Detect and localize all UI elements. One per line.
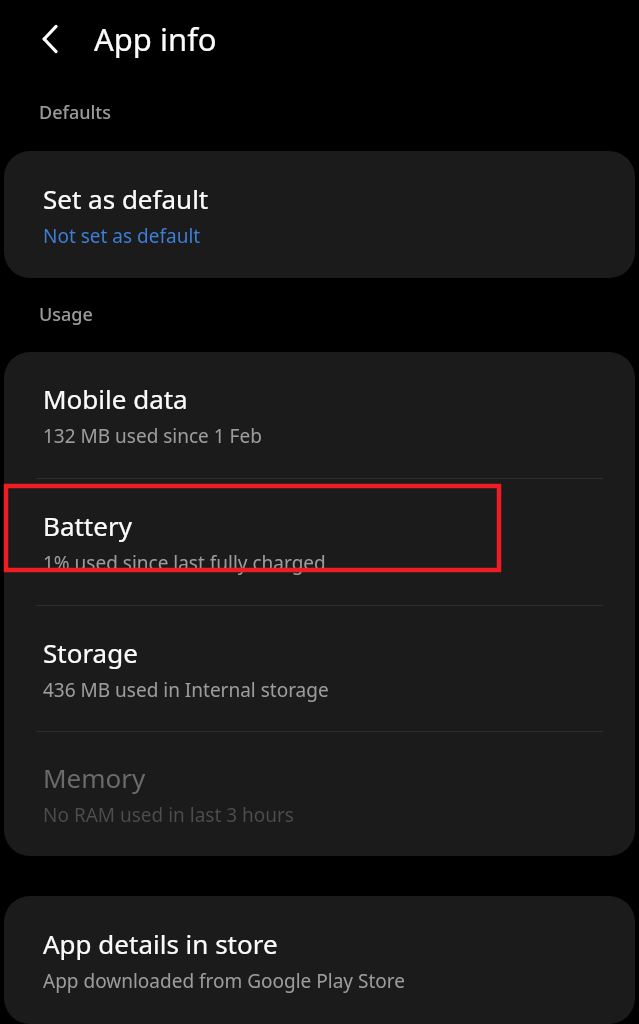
button[interactable]: Set as default	[4, 151, 635, 278]
staticText: 1% used since last fully charged	[43, 550, 326, 576]
staticText: Not set as default	[43, 223, 201, 249]
staticText: Memory	[43, 760, 146, 795]
staticText: Mobile data	[43, 381, 188, 416]
button[interactable]: Battery	[4, 479, 635, 605]
staticText: App downloaded from Google Play Store	[43, 968, 405, 994]
staticText: Usage	[39, 302, 93, 327]
button[interactable]: App details in store	[4, 896, 635, 1024]
staticText: No RAM used in last 3 hours	[43, 802, 294, 828]
staticText: Battery	[43, 508, 132, 543]
button[interactable]: Storage	[4, 606, 635, 731]
staticText: Storage	[43, 635, 138, 670]
button[interactable]: Memory	[4, 732, 635, 856]
staticText: App details in store	[43, 926, 278, 961]
staticText: Defaults	[39, 100, 111, 125]
staticText: 132 MB used since 1 Feb	[43, 423, 262, 449]
staticText: Set as default	[43, 181, 209, 216]
staticText: 436 MB used in Internal storage	[43, 677, 329, 703]
button[interactable]: Mobile data	[4, 352, 635, 478]
button[interactable]: Back	[26, 13, 78, 65]
staticText: App info	[94, 18, 217, 60]
